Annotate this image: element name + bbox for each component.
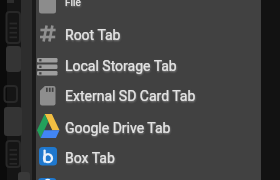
staticText: Local Storage Tab — [65, 58, 177, 74]
button[interactable]: File — [36, 0, 261, 18]
staticText: Google Drive Tab — [65, 120, 171, 136]
button[interactable]: Box Tab — [36, 142, 261, 173]
staticText: External SD Card Tab — [65, 88, 196, 104]
button[interactable]: External SD Card Tab — [36, 80, 261, 111]
button[interactable]: Root Tab — [36, 19, 261, 50]
staticText: File — [65, 0, 81, 9]
staticText: Root Tab — [65, 27, 121, 43]
button[interactable]: Google Drive Tab — [36, 112, 261, 143]
button[interactable]: Local Storage Tab — [36, 50, 261, 81]
staticText: Box Tab — [65, 150, 115, 166]
